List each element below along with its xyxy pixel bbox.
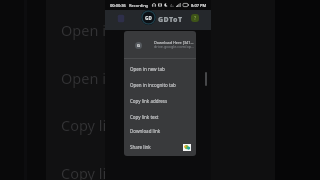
staticText: Open in new tab (130, 66, 165, 72)
button[interactable]: Open in new tab (124, 61, 196, 77)
staticText: GD (145, 15, 152, 21)
staticText: G (137, 43, 140, 48)
staticText: ? (194, 15, 197, 21)
staticText: Copy li (61, 115, 105, 135)
staticText: 4+ (170, 3, 174, 8)
staticText: 8:07 PM (191, 3, 207, 8)
staticText: Share link (130, 144, 151, 150)
staticText: Copy link text (130, 114, 159, 120)
button[interactable]: Share link (124, 139, 196, 155)
button[interactable]: Copy link text (124, 109, 196, 125)
staticText: drive.google.com/op... (154, 44, 195, 49)
button[interactable]: Account (191, 14, 199, 22)
staticText: Download link (130, 128, 161, 134)
button[interactable]: Copy link address (124, 93, 196, 109)
button[interactable]: Download link (124, 123, 196, 139)
staticText: Open in incognito tab (130, 82, 176, 88)
staticText: Copy link address (130, 98, 168, 104)
staticText: Open in (61, 20, 105, 40)
staticText: Download Here [341... (154, 40, 194, 45)
staticText: GDToT (158, 15, 183, 25)
staticText: Open in (61, 68, 105, 88)
button[interactable]: Menu (117, 14, 125, 23)
staticText: 00:00:36 (110, 3, 126, 8)
staticText: Recording (129, 3, 149, 8)
button[interactable]: Open in incognito tab (124, 77, 196, 93)
staticText: Copy li (61, 163, 105, 180)
